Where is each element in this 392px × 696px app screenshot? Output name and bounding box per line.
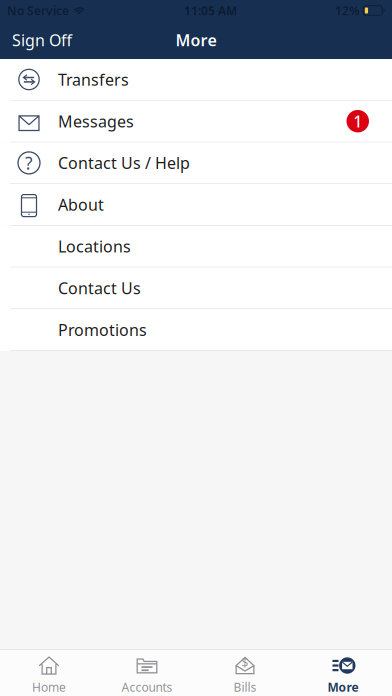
staticText: More [175, 29, 216, 51]
staticText: 12% [335, 2, 360, 18]
staticText: Promotions [58, 319, 147, 340]
staticText: Home [32, 679, 66, 695]
staticText: Messages [58, 111, 134, 132]
staticText: Contact Us / Help [58, 152, 190, 173]
staticText: Contact Us [58, 277, 141, 299]
button[interactable]: Accounts [98, 647, 196, 696]
staticText: About [58, 194, 104, 215]
button[interactable]: Locations [0, 226, 392, 267]
staticText: $ [241, 655, 248, 670]
button[interactable]: Promotions [0, 309, 392, 351]
staticText: Transfers [58, 69, 129, 90]
staticText: ? [25, 151, 33, 174]
staticText: More [327, 679, 358, 695]
button[interactable]: Contact Us [0, 267, 392, 309]
button[interactable]: Sign Off [0, 29, 72, 51]
staticText: Accounts [121, 679, 172, 695]
staticText: Locations [58, 236, 131, 257]
staticText: Sign Off [12, 29, 72, 51]
button[interactable]: ? [0, 142, 392, 184]
button[interactable]: Transfers [0, 59, 392, 101]
button[interactable]: About [0, 184, 392, 226]
button[interactable]: More [294, 647, 392, 696]
button[interactable]: Home [0, 647, 98, 696]
staticText: 1 [353, 111, 362, 132]
staticText: No Service [7, 2, 69, 18]
button[interactable]: Messages [0, 101, 392, 142]
button[interactable]: $ [196, 647, 294, 696]
staticText: 11:05 AM [184, 2, 237, 18]
staticText: Bills [233, 679, 256, 695]
